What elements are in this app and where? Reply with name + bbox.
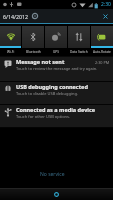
button[interactable]: USB debugging connected [0, 82, 113, 105]
staticText: 6/14/2012 [3, 13, 29, 20]
staticText: Auto-Rotate [93, 50, 111, 54]
staticText: Bluetooth [26, 50, 41, 54]
button[interactable]: Connected as a media device [0, 105, 113, 128]
button[interactable] [100, 11, 110, 21]
staticText: Touch to review the message and try agai… [16, 66, 98, 71]
button[interactable] [91, 26, 113, 48]
button[interactable] [0, 26, 21, 48]
staticText: Wi-Fi [7, 50, 15, 54]
staticText: Touch to disable USB debugging. [16, 91, 78, 96]
button[interactable] [22, 26, 44, 48]
button[interactable]: Message not sent [0, 57, 113, 82]
staticText: Touch for other USB options. [16, 114, 71, 119]
staticText: No service [40, 171, 65, 178]
staticText: Message not sent [16, 58, 65, 65]
staticText: 2:30 [101, 1, 111, 8]
staticText: Connected as a media device [16, 106, 96, 113]
staticText: USB debugging connected [16, 83, 88, 90]
button[interactable] [0, 188, 113, 200]
button[interactable] [68, 26, 90, 48]
staticText: GPS [53, 50, 59, 54]
staticText: 2:30 PM [95, 60, 110, 65]
button[interactable] [45, 26, 67, 48]
staticText: Data Switch [70, 50, 88, 54]
